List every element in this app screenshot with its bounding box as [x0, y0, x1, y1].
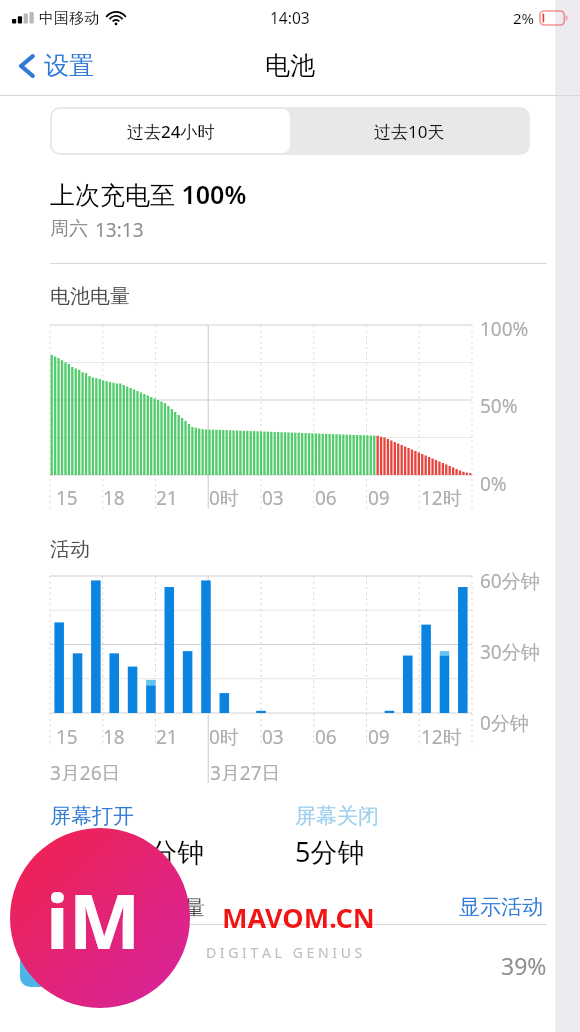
- staticText: 6小时30分钟: [50, 833, 205, 870]
- staticText: 屏幕打开: [50, 803, 134, 829]
- staticText: 15: [56, 485, 78, 511]
- staticText: 18: [103, 724, 125, 750]
- staticText: 百度贴吧: [78, 951, 170, 980]
- staticText: 设置: [44, 50, 94, 81]
- staticText: D I G I T A L G E N I U S: [206, 943, 363, 962]
- staticText: 12时: [421, 485, 462, 511]
- staticText: 21: [156, 724, 178, 750]
- staticText: 60分钟: [480, 568, 540, 594]
- staticText: 显示活动: [459, 894, 543, 920]
- staticText: 3月26日: [50, 760, 121, 781]
- button[interactable]: 设置: [14, 44, 98, 87]
- staticText: 2%: [513, 8, 535, 28]
- staticText: iM: [46, 868, 141, 972]
- staticText: 0时: [209, 724, 239, 750]
- staticText: 14:03: [270, 7, 310, 28]
- staticText: 0分钟: [480, 710, 529, 736]
- staticText: 按 App 显示电量: [50, 893, 206, 922]
- staticText: 电池电量: [50, 284, 130, 309]
- staticText: 39%: [501, 950, 547, 981]
- staticText: 电池: [265, 50, 315, 81]
- staticText: 5分钟: [295, 833, 365, 870]
- staticText: 上次充电至 100%: [50, 177, 247, 211]
- staticText: 中国移动: [39, 9, 99, 28]
- staticText: 09: [368, 485, 390, 511]
- staticText: 3月27日: [210, 760, 281, 781]
- staticText: MAVOM.CN: [222, 899, 375, 936]
- staticText: 100%: [480, 316, 529, 342]
- staticText: 0时: [209, 485, 239, 511]
- staticText: 03: [262, 485, 284, 511]
- staticText: 13:13: [95, 217, 144, 243]
- button[interactable]: 百度贴吧: [0, 943, 580, 987]
- button[interactable]: 过去24小时: [52, 109, 290, 153]
- staticText: 过去24小时: [127, 120, 215, 143]
- staticText: 0%: [480, 471, 507, 497]
- button[interactable]: 显示活动: [455, 890, 547, 924]
- staticText: 50%: [480, 393, 518, 419]
- button[interactable]: 过去10天: [290, 109, 528, 153]
- staticText: 15: [56, 724, 78, 750]
- staticText: 屏幕关闭: [295, 803, 379, 829]
- staticText: 12时: [421, 724, 462, 750]
- staticText: 06: [315, 724, 337, 750]
- staticText: 活动: [50, 537, 90, 562]
- staticText: 06: [315, 485, 337, 511]
- staticText: 09: [368, 724, 390, 750]
- staticText: 周六: [50, 217, 88, 241]
- staticText: 18: [103, 485, 125, 511]
- staticText: 过去10天: [374, 120, 445, 143]
- staticText: 21: [156, 485, 178, 511]
- staticText: 03: [262, 724, 284, 750]
- staticText: 30分钟: [480, 639, 540, 665]
